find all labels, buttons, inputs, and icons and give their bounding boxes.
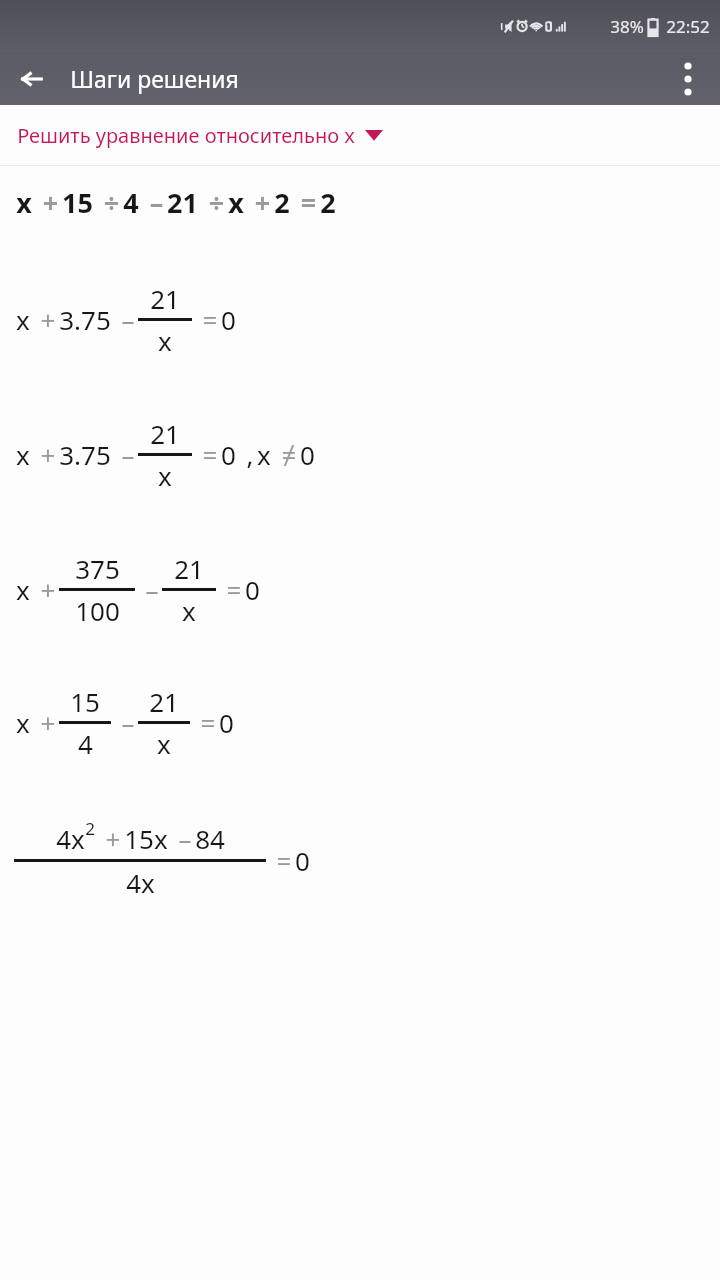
staticText: 4 <box>123 184 139 221</box>
staticText: + <box>30 705 59 740</box>
staticText: + <box>30 437 59 472</box>
staticText: x <box>228 184 244 221</box>
staticText: 0 <box>221 302 236 337</box>
staticText: 2 <box>274 184 290 221</box>
staticText: 15x <box>124 821 168 856</box>
staticText: 38% <box>610 15 644 38</box>
staticText: 0 <box>295 843 310 878</box>
button[interactable]: Back <box>8 55 56 103</box>
staticText: ÷ <box>93 184 123 221</box>
staticText: 4x <box>56 821 85 856</box>
staticText: 100 <box>75 593 120 628</box>
staticText: x <box>158 323 172 358</box>
staticText: Решить уравнение относительно x <box>17 122 355 149</box>
staticText: = <box>266 843 295 878</box>
staticText: 21 <box>167 184 198 221</box>
staticText: , <box>236 437 257 472</box>
staticText: x <box>16 437 30 472</box>
staticText: + <box>30 572 59 607</box>
staticText: x <box>16 184 32 221</box>
staticText: ≠ <box>271 437 300 472</box>
staticText: x <box>182 593 196 628</box>
staticText: = <box>190 705 219 740</box>
staticText: 0 <box>300 437 315 472</box>
staticText: 2 <box>85 817 95 840</box>
staticText: x <box>257 437 271 472</box>
staticText: + <box>32 184 62 221</box>
staticText: 4x <box>126 865 155 900</box>
staticText: – <box>168 821 195 856</box>
button[interactable]: Решить уравнение относительно x <box>0 105 720 165</box>
staticText: 22:52 <box>666 15 710 38</box>
staticText: 4 <box>78 726 93 761</box>
staticText: + <box>95 821 124 856</box>
staticText: 15 <box>70 684 100 719</box>
staticText: 3.75 <box>59 302 111 337</box>
staticText: x <box>157 726 171 761</box>
staticText: 21 <box>150 416 180 451</box>
staticText: = <box>192 302 221 337</box>
staticText: 21 <box>150 281 180 316</box>
staticText: + <box>244 184 274 221</box>
staticText: 84 <box>195 821 225 856</box>
staticText: x <box>16 302 30 337</box>
staticText: 0 <box>245 572 260 607</box>
staticText: 0 <box>221 437 236 472</box>
staticText: Шаги решения <box>70 63 239 94</box>
staticText: ÷ <box>198 184 228 221</box>
staticText: = <box>192 437 221 472</box>
staticText: 2 <box>320 184 336 221</box>
staticText: 3.75 <box>59 437 111 472</box>
staticText: 21 <box>149 684 179 719</box>
staticText: x <box>16 705 30 740</box>
staticText: = <box>290 184 320 221</box>
staticText: – <box>135 572 162 607</box>
staticText: = <box>216 572 245 607</box>
staticText: 15 <box>62 184 93 221</box>
staticText: – <box>111 302 138 337</box>
staticText: x <box>16 572 30 607</box>
button[interactable]: More options <box>666 57 710 101</box>
staticText: 375 <box>75 551 120 586</box>
staticText: 21 <box>174 551 204 586</box>
staticText: – <box>111 705 138 740</box>
staticText: – <box>111 437 138 472</box>
staticText: x <box>158 458 172 493</box>
staticText: – <box>139 184 167 221</box>
staticText: 0 <box>219 705 234 740</box>
staticText: + <box>30 302 59 337</box>
